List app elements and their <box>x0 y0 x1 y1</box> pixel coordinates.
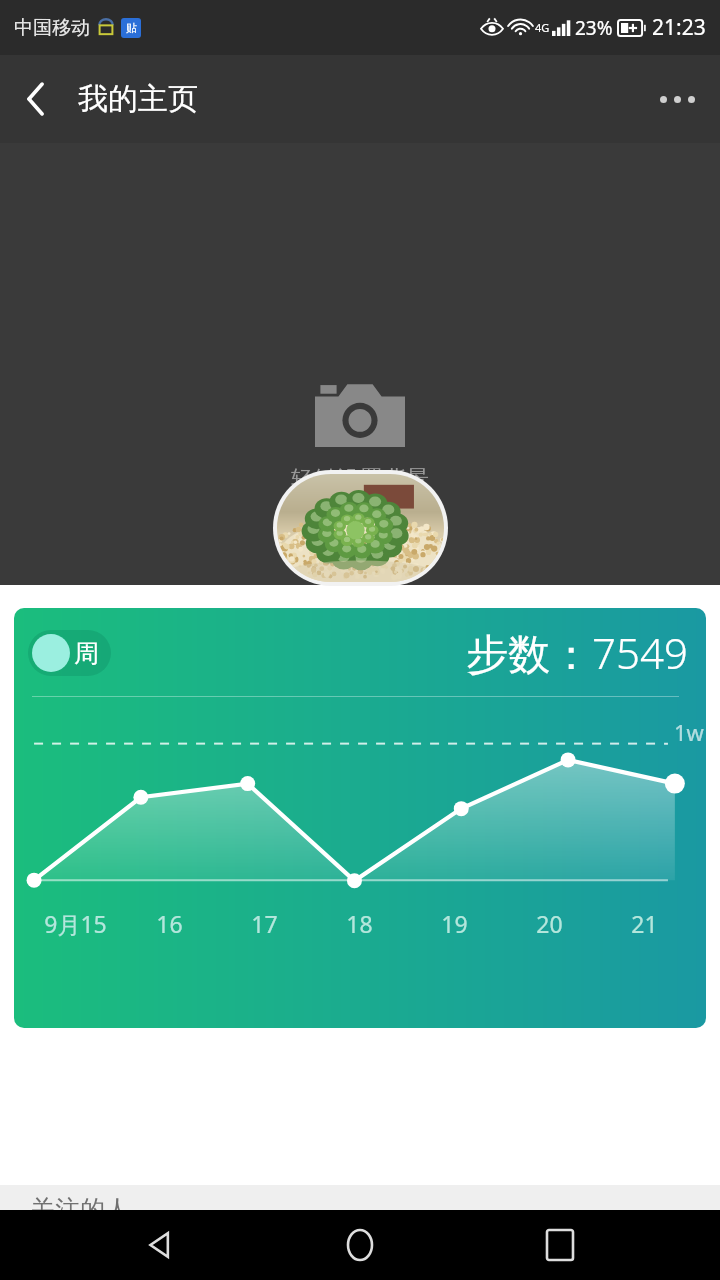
staticText: 4G <box>535 20 550 35</box>
staticText: 21 <box>631 908 658 939</box>
staticText: 18 <box>346 908 373 939</box>
staticText: 我的主页 <box>78 80 198 118</box>
staticText: 周 <box>74 638 99 669</box>
button[interactable]: Back <box>8 71 64 127</box>
staticText: 中国移动 <box>14 16 90 40</box>
button[interactable]: 关注的人 <box>0 1185 720 1210</box>
button[interactable]: Recent apps <box>520 1210 600 1280</box>
staticText: 23% <box>575 15 613 41</box>
staticText: 16 <box>156 908 183 939</box>
staticText: 关注的人 <box>30 1194 130 1210</box>
button[interactable]: Home <box>320 1210 400 1280</box>
staticText: 1w <box>674 717 704 747</box>
staticText: 9月15 <box>44 908 107 939</box>
staticText: 17 <box>251 908 278 939</box>
staticText: 步数：7549 <box>466 624 688 681</box>
staticText: 21:23 <box>652 13 706 42</box>
staticText: 轻触设置背景 <box>291 465 429 494</box>
button[interactable]: 周 <box>32 634 107 672</box>
staticText: 贴 <box>126 21 137 35</box>
button[interactable]: Set background <box>0 143 720 585</box>
button[interactable]: More options <box>646 68 708 130</box>
button[interactable]: 周 <box>14 608 706 1028</box>
button[interactable]: Back <box>120 1210 200 1280</box>
button[interactable]: Profile photo <box>277 474 444 582</box>
staticText: 20 <box>536 908 563 939</box>
staticText: 19 <box>441 908 468 939</box>
